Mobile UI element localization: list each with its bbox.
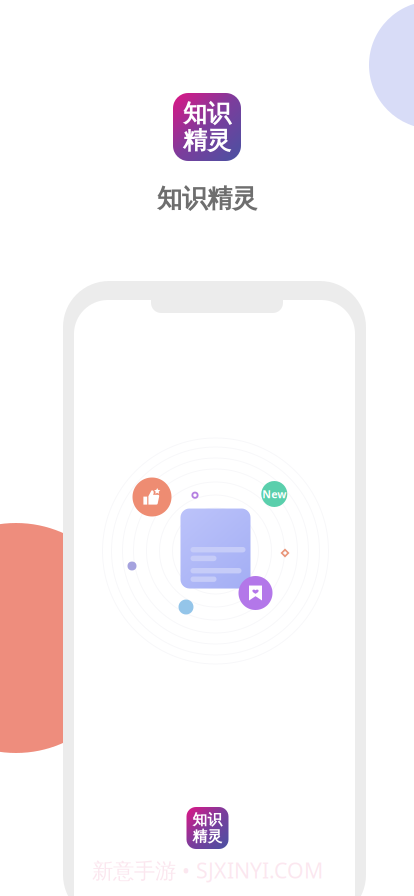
- staticText: 精灵: [192, 827, 222, 845]
- staticText: 新意手游 • SJXINYI.COM: [92, 856, 323, 884]
- staticText: 精灵: [183, 126, 231, 155]
- staticText: 知识精灵: [157, 183, 257, 214]
- staticText: New: [262, 487, 286, 501]
- staticText: 知识: [192, 811, 222, 829]
- staticText: 知识: [183, 99, 231, 128]
